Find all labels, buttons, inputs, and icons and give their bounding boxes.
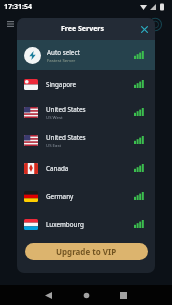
staticText: US East	[46, 142, 62, 148]
staticText: Singapore	[46, 80, 77, 89]
button[interactable]: United States	[17, 98, 155, 126]
staticText: Upgrade to VIP	[56, 246, 117, 257]
button[interactable]	[83, 292, 90, 299]
button[interactable]: Canada	[17, 154, 155, 182]
staticText: Fastest Server	[47, 57, 76, 63]
button[interactable]: Germany	[17, 182, 155, 210]
button[interactable]: Upgrade to VIP	[25, 243, 148, 260]
button[interactable]	[139, 24, 150, 35]
button[interactable]	[45, 292, 52, 299]
button[interactable]: United States	[17, 126, 155, 154]
staticText: Luxembourg	[46, 220, 84, 229]
button[interactable]: Luxembourg	[17, 210, 155, 238]
staticText: United States	[46, 105, 86, 114]
staticText: US West	[46, 114, 63, 120]
button[interactable]: Singapore	[17, 70, 155, 98]
staticText: 17:31:54	[4, 2, 32, 12]
button[interactable]: Auto select	[17, 40, 155, 70]
staticText: United States	[46, 133, 86, 142]
staticText: Canada	[46, 164, 69, 173]
staticText: Free Servers	[61, 24, 104, 34]
staticText: Germany	[46, 192, 74, 201]
staticText: Auto select	[47, 48, 80, 57]
